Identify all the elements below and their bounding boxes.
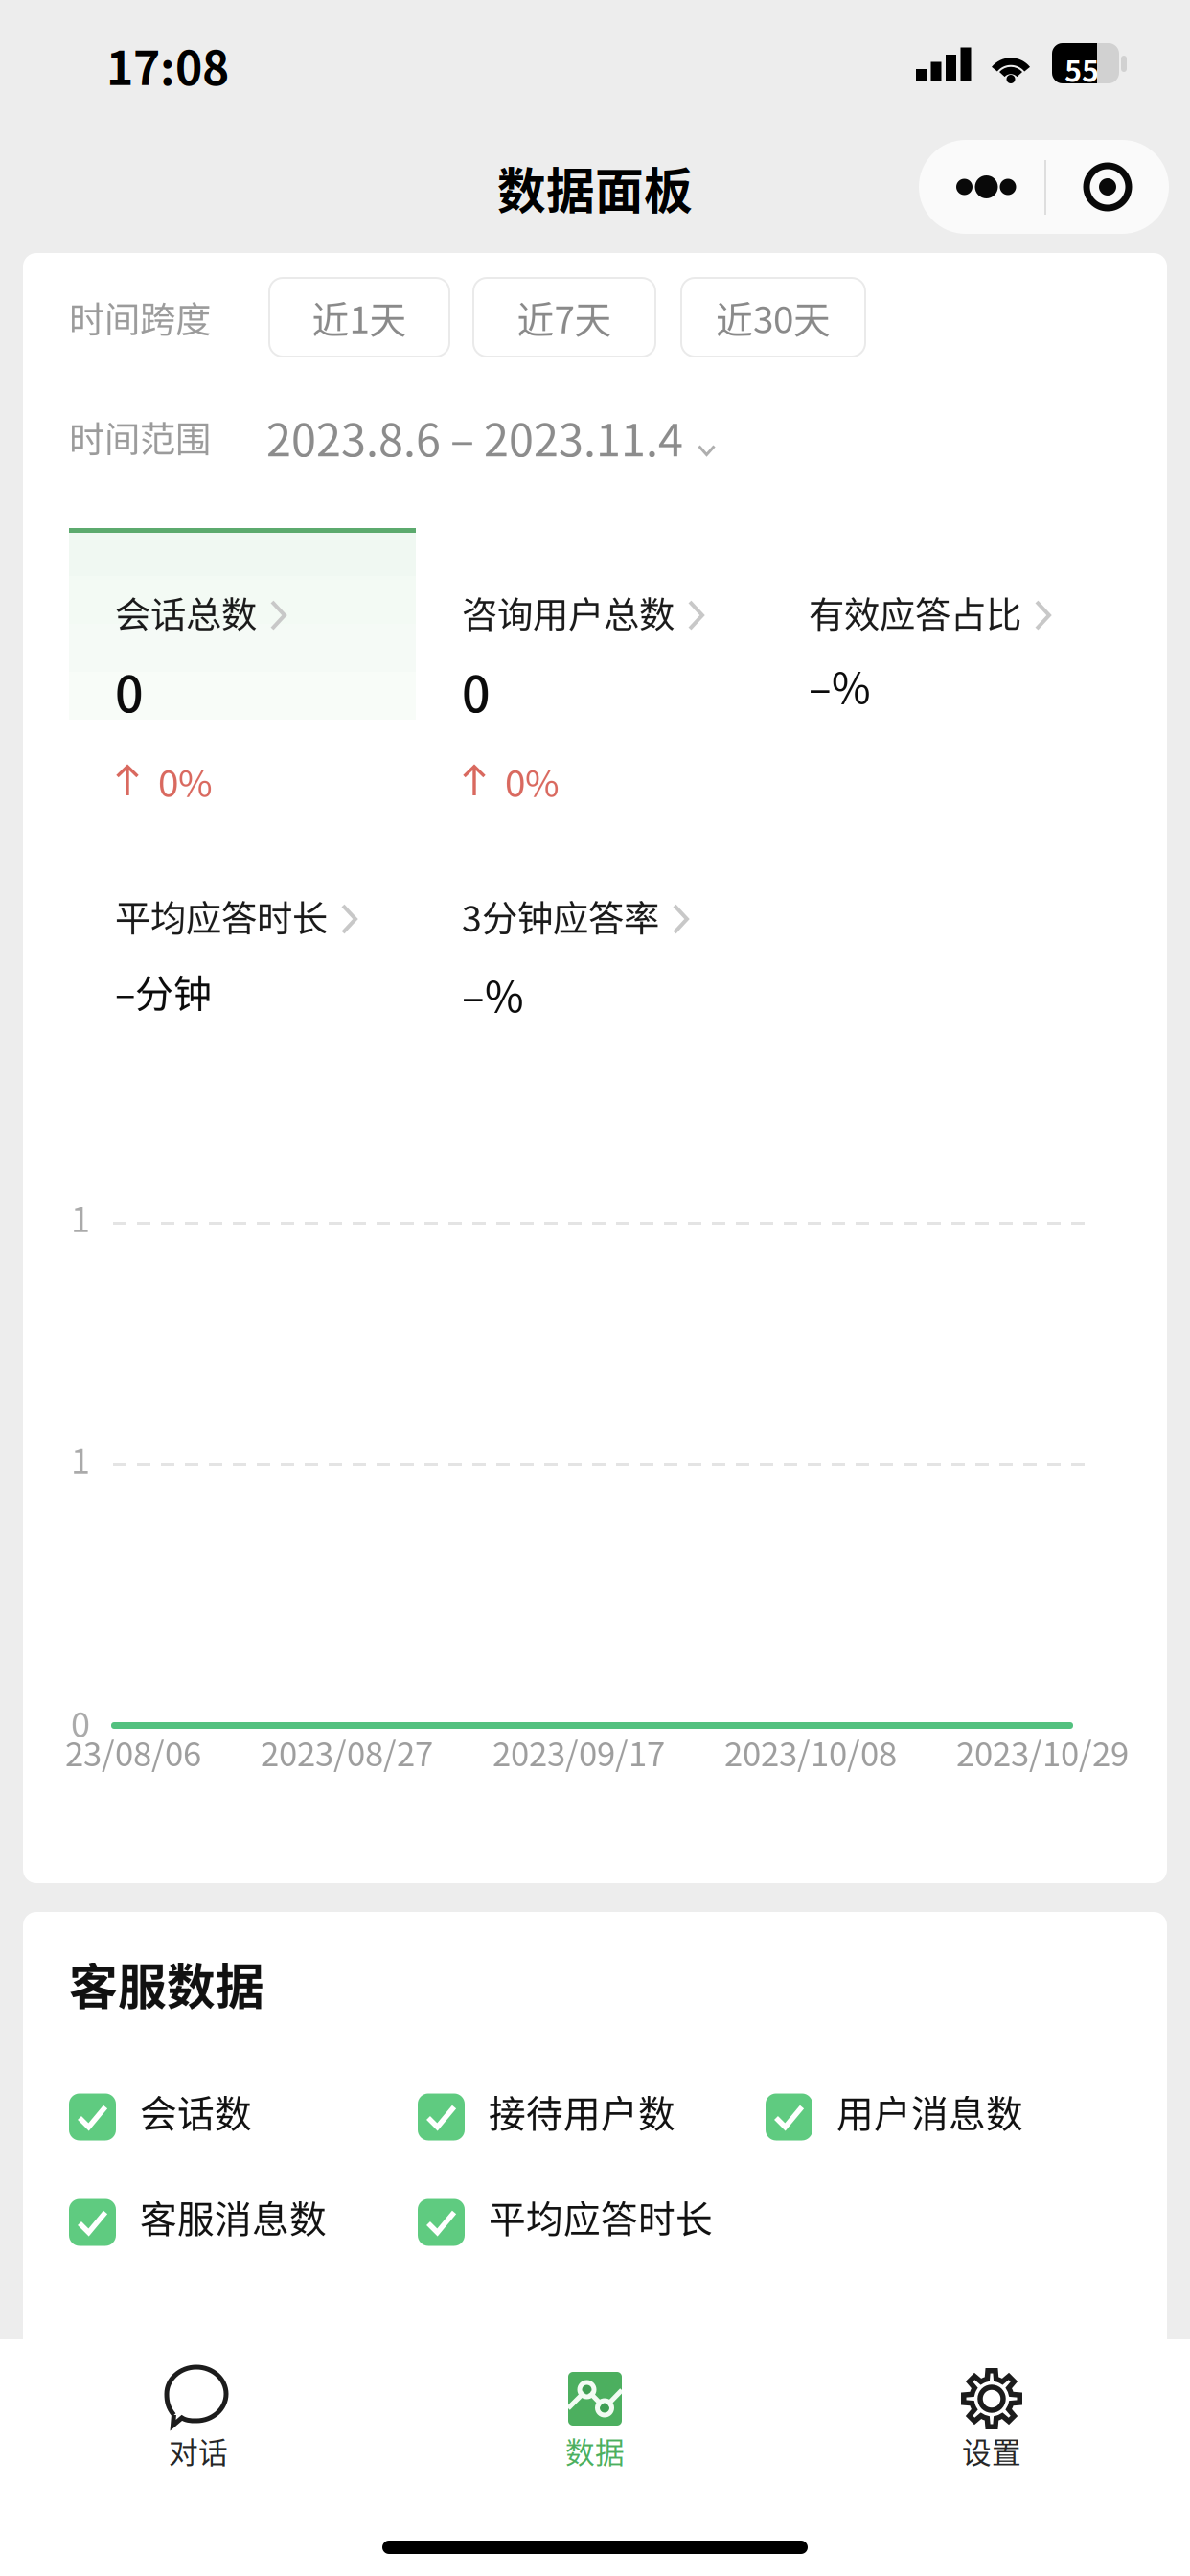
staticText: 近30天 [716, 290, 831, 344]
staticText: 17:08 [106, 32, 229, 98]
staticText: 23/08/06 [65, 1728, 201, 1776]
staticText: 平均应答时长 [489, 2190, 713, 2243]
button[interactable]: 用户消息数 [766, 2090, 1023, 2144]
staticText: –分钟 [115, 963, 212, 1019]
button[interactable]: 3分钟应答率 [416, 832, 763, 1115]
staticText: 会话总数 [115, 586, 257, 638]
staticText: 咨询用户总数 [462, 586, 675, 638]
staticText: 数据 [565, 2429, 625, 2472]
button[interactable]: 有效应答占比 [763, 528, 1110, 812]
button[interactable]: 近1天 [269, 278, 449, 356]
button[interactable]: 设置 [793, 2358, 1190, 2493]
staticText: 有效应答占比 [809, 586, 1021, 638]
staticText: 55 [1064, 48, 1099, 90]
staticText: 0 [71, 1697, 90, 1747]
button[interactable]: More options and close [919, 140, 1169, 234]
button[interactable]: 会话总数 [69, 528, 416, 812]
button[interactable]: 平均应答时长 [418, 2196, 713, 2249]
staticText: 1 [71, 1434, 90, 1484]
staticText: 会话数 [140, 2084, 252, 2138]
staticText: 0 [115, 655, 144, 727]
staticText: 0% [158, 754, 213, 808]
staticText: –% [809, 655, 871, 716]
staticText: 设置 [962, 2429, 1021, 2472]
staticText: 3分钟应答率 [462, 890, 659, 942]
button[interactable]: 客服消息数 [69, 2196, 327, 2249]
staticText: 平均应答时长 [115, 890, 328, 942]
staticText: 数据面板 [497, 153, 693, 223]
staticText: 近1天 [312, 290, 407, 344]
staticText: –% [462, 963, 524, 1024]
staticText: 0 [462, 655, 491, 727]
staticText: 客服消息数 [140, 2190, 327, 2243]
staticText: 2023/10/29 [956, 1728, 1129, 1776]
button[interactable]: 平均应答时长 [69, 832, 416, 1115]
staticText: 2023/09/17 [492, 1728, 665, 1776]
button[interactable]: 近7天 [473, 278, 655, 356]
button[interactable]: 近30天 [681, 278, 865, 356]
staticText: 近7天 [517, 290, 612, 344]
staticText: 对话 [169, 2429, 228, 2472]
staticText: 1 [71, 1192, 90, 1242]
staticText: 客服数据 [69, 1948, 264, 2019]
staticText: 2023/10/08 [724, 1728, 897, 1776]
staticText: 2023/08/27 [261, 1728, 433, 1776]
button[interactable]: 会话数 [69, 2090, 252, 2144]
staticText: 接待用户数 [489, 2084, 675, 2138]
staticText: 用户消息数 [836, 2084, 1023, 2138]
staticText: 2023.8.6 – 2023.11.4 [266, 404, 683, 469]
button[interactable]: 对话 [0, 2358, 397, 2493]
staticText: 0% [505, 754, 560, 808]
button[interactable]: 接待用户数 [418, 2090, 675, 2144]
button[interactable]: 数据 [397, 2358, 793, 2493]
button[interactable]: 咨询用户总数 [416, 528, 763, 812]
staticText: 时间跨度 [69, 291, 211, 343]
staticText: 55 [1064, 48, 1099, 90]
staticText: 时间范围 [69, 411, 211, 463]
